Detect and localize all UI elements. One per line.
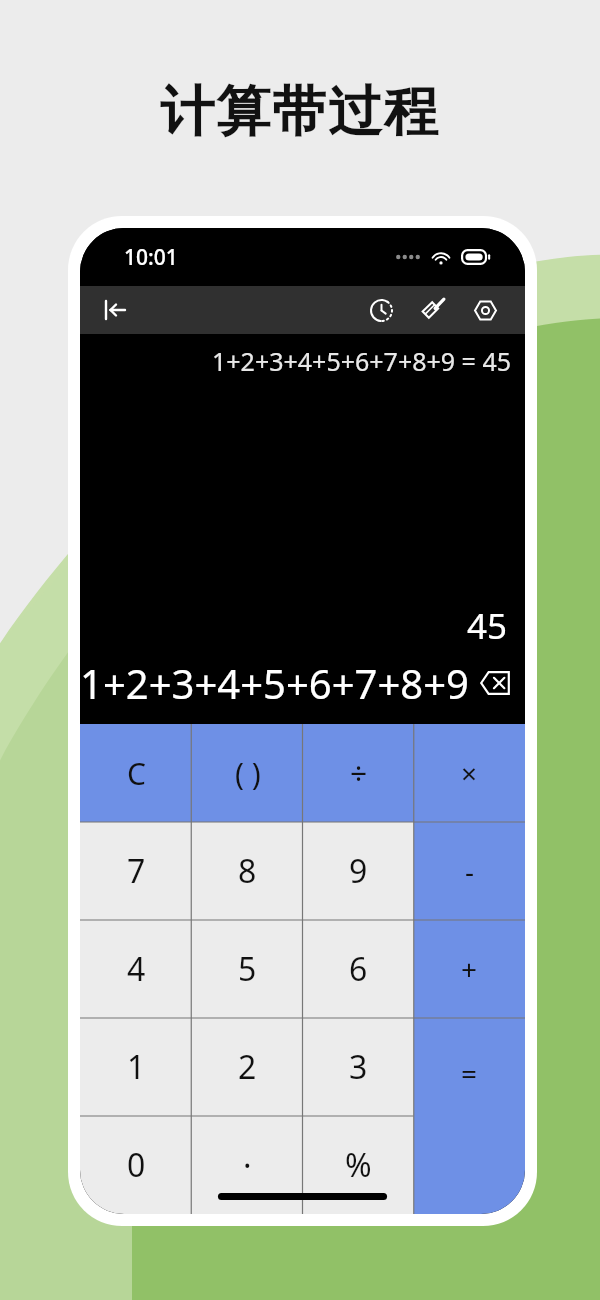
button[interactable]: 9 [303, 822, 414, 920]
button[interactable]: Settings [459, 286, 511, 334]
staticText: C [127, 753, 146, 794]
button[interactable]: C [80, 724, 192, 822]
button[interactable]: History [355, 286, 407, 334]
button[interactable]: ÷ [303, 724, 414, 822]
button[interactable]: 6 [303, 920, 414, 1018]
button[interactable]: = [414, 1018, 525, 1214]
staticText: + [461, 950, 478, 988]
staticText: 3 [349, 1045, 368, 1089]
button[interactable]: × [414, 724, 525, 822]
staticText: · [243, 1143, 252, 1187]
staticText: 4 [127, 947, 146, 991]
staticText: 计算带过程 [0, 78, 600, 146]
staticText: 45 [80, 602, 507, 650]
staticText: 5 [238, 947, 257, 991]
button[interactable]: 7 [80, 822, 192, 920]
staticText: 8 [238, 849, 257, 893]
staticText: 0 [127, 1143, 146, 1187]
staticText: × [461, 754, 478, 792]
button[interactable]: 8 [192, 822, 303, 920]
button[interactable]: + [414, 920, 525, 1018]
staticText: ÷ [350, 753, 368, 794]
button[interactable]: · [192, 1116, 303, 1214]
staticText: ( ) [235, 753, 261, 794]
button[interactable]: - [414, 822, 525, 920]
button[interactable]: Back [92, 287, 138, 333]
button[interactable]: 1 [80, 1018, 192, 1116]
button[interactable]: % [303, 1116, 414, 1214]
button[interactable]: 0 [80, 1116, 192, 1214]
staticText: 6 [349, 947, 368, 991]
staticText: 10:01 [124, 243, 178, 272]
staticText: 7 [127, 849, 146, 893]
staticText: 1+2+3+4+5+6+7+8+9 [80, 656, 469, 710]
button[interactable]: ( ) [192, 724, 303, 822]
button[interactable]: Clear [407, 286, 459, 334]
staticText: = [461, 1054, 478, 1092]
staticText: 1+2+3+4+5+6+7+8+9 = 45 [80, 344, 511, 378]
staticText: % [345, 1143, 372, 1187]
staticText: 1 [127, 1045, 146, 1089]
staticText: - [465, 852, 475, 890]
button[interactable]: 2 [192, 1018, 303, 1116]
button[interactable]: Backspace [479, 663, 511, 703]
staticText: 2 [238, 1045, 257, 1089]
button[interactable]: 5 [192, 920, 303, 1018]
button[interactable]: 4 [80, 920, 192, 1018]
button[interactable]: 3 [303, 1018, 414, 1116]
staticText: 9 [349, 849, 368, 893]
